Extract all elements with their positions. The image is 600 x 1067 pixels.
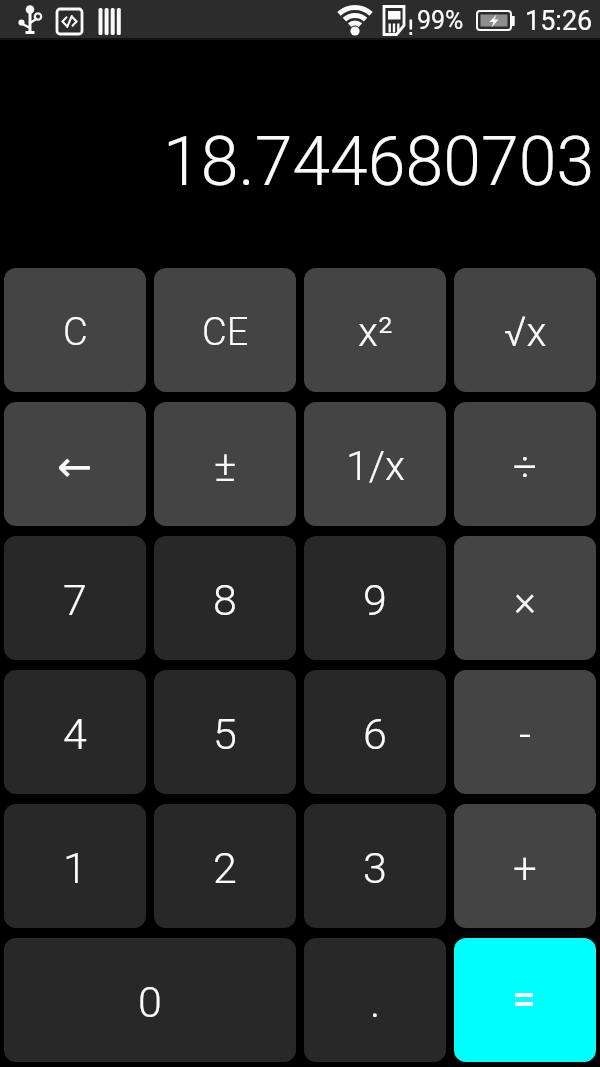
button[interactable]: x² (304, 268, 446, 392)
button[interactable]: CE (154, 268, 296, 392)
staticText: + (513, 844, 537, 893)
staticText: 7 (63, 575, 87, 625)
staticText: ± (214, 442, 237, 491)
button[interactable]: 8 (154, 536, 296, 660)
staticText: 4 (63, 709, 87, 759)
staticText: 1 (63, 843, 87, 893)
button[interactable]: 3 (304, 804, 446, 928)
button[interactable]: 6 (304, 670, 446, 794)
staticText: 8 (213, 575, 237, 625)
staticText: 5 (213, 709, 237, 759)
staticText: 9 (363, 575, 387, 625)
button[interactable]: C (4, 268, 146, 392)
staticText: ÷ (513, 442, 537, 491)
button[interactable]: × (454, 536, 596, 660)
button[interactable]: 5 (154, 670, 296, 794)
button[interactable]: 1 (4, 804, 146, 928)
staticText: 3 (363, 843, 387, 893)
button[interactable]: 7 (4, 536, 146, 660)
button[interactable]: ← (4, 402, 146, 526)
staticText: 15:26 (525, 5, 593, 37)
button[interactable]: ± (154, 402, 296, 526)
staticText: - (519, 710, 532, 759)
button[interactable]: . (304, 938, 446, 1062)
button[interactable]: 1/x (304, 402, 446, 526)
button[interactable]: + (454, 804, 596, 928)
staticText: 1/x (346, 442, 405, 490)
button[interactable] (454, 938, 596, 1062)
button[interactable]: ÷ (454, 402, 596, 526)
staticText: 0 (138, 977, 162, 1027)
staticText: C (63, 310, 88, 355)
staticText: x² (358, 308, 393, 356)
button[interactable]: 9 (304, 536, 446, 660)
staticText: 99% (417, 6, 464, 35)
staticText: × (514, 576, 536, 625)
staticText: 2 (213, 843, 237, 893)
staticText: 18.744680703 (163, 122, 595, 202)
button[interactable]: 0 (4, 938, 296, 1062)
staticText: . (370, 977, 381, 1027)
staticText: √x (504, 308, 547, 356)
button[interactable]: 4 (4, 670, 146, 794)
button[interactable]: 2 (154, 804, 296, 928)
staticText: 6 (363, 709, 387, 759)
staticText: CE (202, 310, 249, 355)
button[interactable]: √x (454, 268, 596, 392)
button[interactable]: - (454, 670, 596, 794)
staticText: ← (57, 442, 93, 491)
